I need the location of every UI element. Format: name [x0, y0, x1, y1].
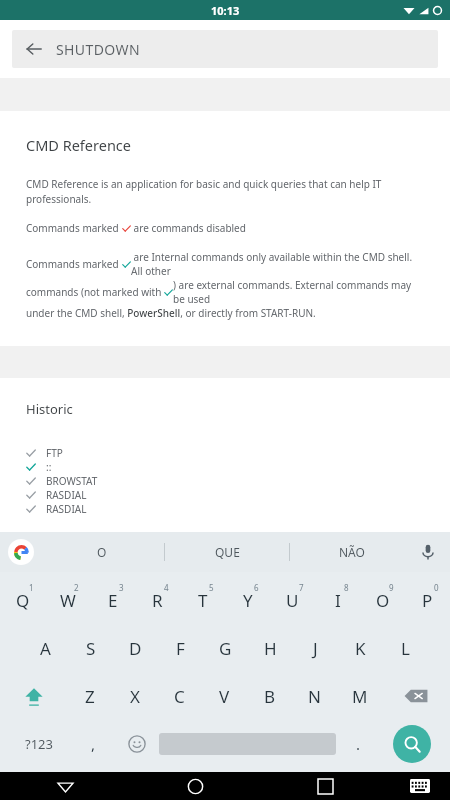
button[interactable]: . [336, 722, 380, 766]
staticText: U [286, 589, 299, 612]
button[interactable]: G [203, 624, 248, 672]
staticText: ) are external commands. External comman… [173, 278, 424, 306]
button[interactable]: Z [67, 672, 112, 720]
staticText: X [130, 685, 140, 708]
staticText: 8 [344, 582, 349, 593]
button[interactable]: Back [12, 30, 56, 68]
button[interactable]: Q [0, 576, 45, 624]
button[interactable]: Recent apps [260, 772, 390, 800]
staticText: . [356, 734, 361, 754]
staticText: CMD Reference is an application for basi… [26, 177, 424, 206]
button[interactable]: Y [225, 576, 270, 624]
staticText: M [352, 685, 368, 708]
staticText: T [198, 589, 208, 612]
button[interactable]: Home [130, 772, 260, 800]
button[interactable]: T [180, 576, 225, 624]
button[interactable]: Emoji [115, 722, 159, 766]
staticText: Historic [26, 400, 73, 418]
staticText: ?123 [25, 735, 53, 753]
staticText: A [40, 637, 51, 660]
staticText: 5 [209, 582, 214, 593]
button[interactable]: Voice input [416, 540, 440, 564]
button[interactable]: V [202, 672, 247, 720]
button[interactable]: X [112, 672, 157, 720]
staticText: Y [243, 589, 253, 612]
staticText: 4 [164, 582, 169, 593]
staticText: E [108, 589, 118, 612]
staticText: BROWSTAT [46, 474, 98, 488]
staticText: under the CMD shell, PowerShell, or dire… [26, 306, 316, 320]
button[interactable]: K [338, 624, 383, 672]
button[interactable]: F [158, 624, 203, 672]
staticText: Q [16, 589, 30, 612]
button[interactable]: Shift caps lock [0, 672, 67, 720]
button[interactable]: M [337, 672, 382, 720]
staticText: 0 [434, 582, 439, 593]
button[interactable]: Back [12, 30, 438, 68]
staticText: 7 [299, 582, 304, 593]
button[interactable]: N [292, 672, 337, 720]
button[interactable]: H [248, 624, 293, 672]
button[interactable]: A [22, 624, 68, 672]
button[interactable]: W [45, 576, 90, 624]
staticText: I [335, 589, 341, 612]
button[interactable]: , [71, 722, 115, 766]
staticText: CMD Reference [26, 135, 132, 155]
staticText: Z [85, 685, 95, 708]
staticText: O [376, 589, 390, 612]
button[interactable]: O [40, 535, 164, 569]
button[interactable]: Backspace [382, 672, 450, 720]
staticText: L [401, 637, 410, 660]
staticText: 3 [119, 582, 124, 593]
button[interactable]: J [293, 624, 338, 672]
staticText: , [91, 734, 96, 754]
button[interactable]: I [315, 576, 360, 624]
button[interactable]: D [113, 624, 158, 672]
button[interactable]: P [405, 576, 450, 624]
staticText: J [313, 637, 318, 660]
staticText: 6 [254, 582, 259, 593]
button[interactable]: U [270, 576, 315, 624]
staticText: 1 [29, 582, 34, 593]
button[interactable]: NÃO [290, 535, 414, 569]
button[interactable]: O [360, 576, 405, 624]
staticText: N [308, 685, 321, 708]
button[interactable]: ?123 [6, 722, 71, 766]
staticText: SHUTDOWN [56, 40, 140, 59]
staticText: W [60, 589, 76, 612]
staticText: 2 [74, 582, 79, 593]
button[interactable]: B [247, 672, 292, 720]
button[interactable]: Back [0, 772, 130, 800]
staticText: are commands disabled [131, 221, 246, 235]
button[interactable]: C [157, 672, 202, 720]
button[interactable]: FTP [26, 446, 424, 460]
button[interactable]: BROWSTAT [26, 474, 424, 488]
staticText: R [152, 589, 163, 612]
button[interactable]: L [383, 624, 428, 672]
staticText: FTP [46, 446, 63, 460]
button[interactable]: R [135, 576, 180, 624]
staticText: H [264, 637, 277, 660]
button[interactable]: RASDIAL [26, 502, 424, 516]
staticText: P [422, 589, 433, 612]
staticText: D [129, 637, 142, 660]
staticText: QUE [215, 544, 240, 560]
staticText: G [219, 637, 232, 660]
staticText: 9 [389, 582, 394, 593]
button[interactable]: Search [393, 725, 431, 763]
staticText: Commands marked [26, 257, 122, 271]
staticText: commands (not marked with [26, 285, 164, 299]
button[interactable]: S [68, 624, 113, 672]
button[interactable]: E [90, 576, 135, 624]
button[interactable]: Switch keyboard [390, 772, 450, 800]
button[interactable]: QUE [165, 535, 289, 569]
staticText: B [264, 685, 276, 708]
staticText: RASDIAL [46, 488, 87, 502]
staticText: are Internal commands only available wit… [131, 250, 424, 278]
button[interactable]: Google [8, 539, 34, 565]
button[interactable]: :: [26, 460, 424, 474]
staticText: S [86, 637, 96, 660]
button[interactable]: RASDIAL [26, 488, 424, 502]
staticText: :: [46, 460, 52, 474]
